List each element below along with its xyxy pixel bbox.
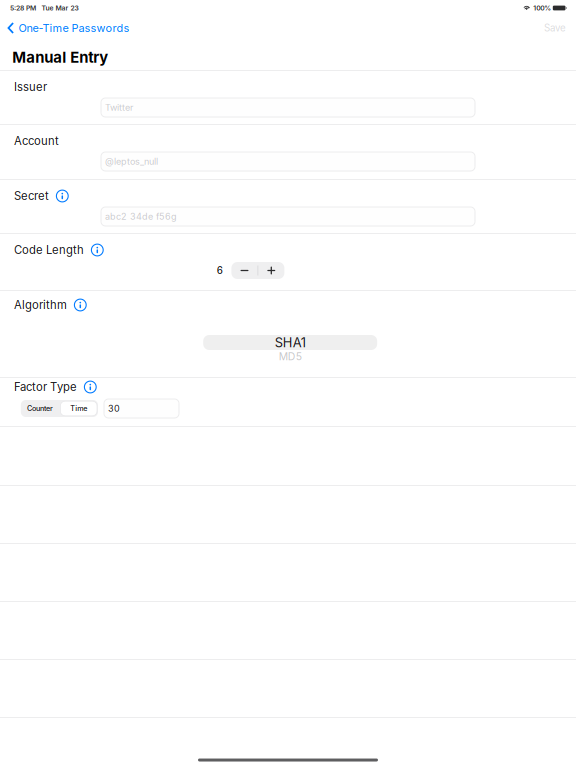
staticText: Save <box>544 22 566 34</box>
staticText: Algorithm <box>14 298 67 312</box>
staticText: Counter <box>27 404 53 413</box>
button[interactable]: Time <box>59 400 98 417</box>
staticText: 100% <box>533 4 551 12</box>
staticText: 5:28 PM <box>10 4 36 12</box>
button[interactable]: Decrease code length <box>231 262 257 279</box>
button[interactable]: One-Time Passwords <box>0 18 136 38</box>
button[interactable]: MD5 <box>203 350 377 363</box>
staticText: Account <box>14 134 59 148</box>
staticText: Manual Entry <box>12 48 108 66</box>
staticText: Issuer <box>14 80 47 94</box>
staticText: Tue Mar 23 <box>41 4 78 12</box>
staticText: Code Length <box>14 243 84 257</box>
button[interactable]: Twitter <box>101 98 475 117</box>
button[interactable]: Increase code length <box>258 262 284 279</box>
staticText: Secret <box>14 189 49 203</box>
button[interactable]: @leptos_null <box>101 152 475 171</box>
staticText: Time <box>70 404 87 413</box>
staticText: abc2 34de f56g <box>105 211 177 222</box>
staticText: Twitter <box>105 102 133 113</box>
staticText: 6 <box>217 265 223 276</box>
staticText: One-Time Passwords <box>18 21 129 35</box>
button[interactable]: Counter <box>21 400 59 417</box>
staticText: @leptos_null <box>105 156 158 167</box>
button[interactable]: Save <box>534 18 576 38</box>
button[interactable]: SHA1 <box>203 335 377 350</box>
button[interactable]: abc2 34de f56g <box>101 207 475 226</box>
staticText: SHA1 <box>275 335 306 350</box>
staticText: Factor Type <box>14 380 77 394</box>
staticText: 30 <box>108 403 120 414</box>
button[interactable]: 30 <box>104 399 179 418</box>
staticText: MD5 <box>279 350 302 363</box>
